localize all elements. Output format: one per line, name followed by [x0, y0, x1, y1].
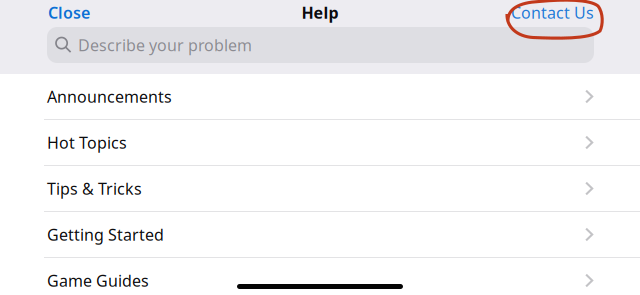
staticText: Game Guides — [47, 270, 149, 291]
staticText: Hot Topics — [47, 132, 127, 153]
staticText: Describe your problem — [78, 34, 252, 56]
staticText: Getting Started — [47, 224, 164, 245]
button[interactable]: Hot Topics — [0, 120, 640, 166]
button[interactable]: Announcements — [0, 74, 640, 120]
button[interactable]: Contact Us — [511, 2, 594, 23]
staticText: Announcements — [47, 86, 172, 107]
staticText: Contact Us — [511, 2, 594, 23]
button[interactable]: Getting Started — [0, 212, 640, 258]
staticText: Tips & Tricks — [47, 178, 142, 199]
button[interactable]: Close — [48, 2, 90, 23]
staticText: Help — [301, 2, 338, 23]
staticText: Close — [48, 2, 90, 23]
button[interactable]: Game Guides — [0, 258, 640, 295]
button[interactable]: Tips & Tricks — [0, 166, 640, 212]
